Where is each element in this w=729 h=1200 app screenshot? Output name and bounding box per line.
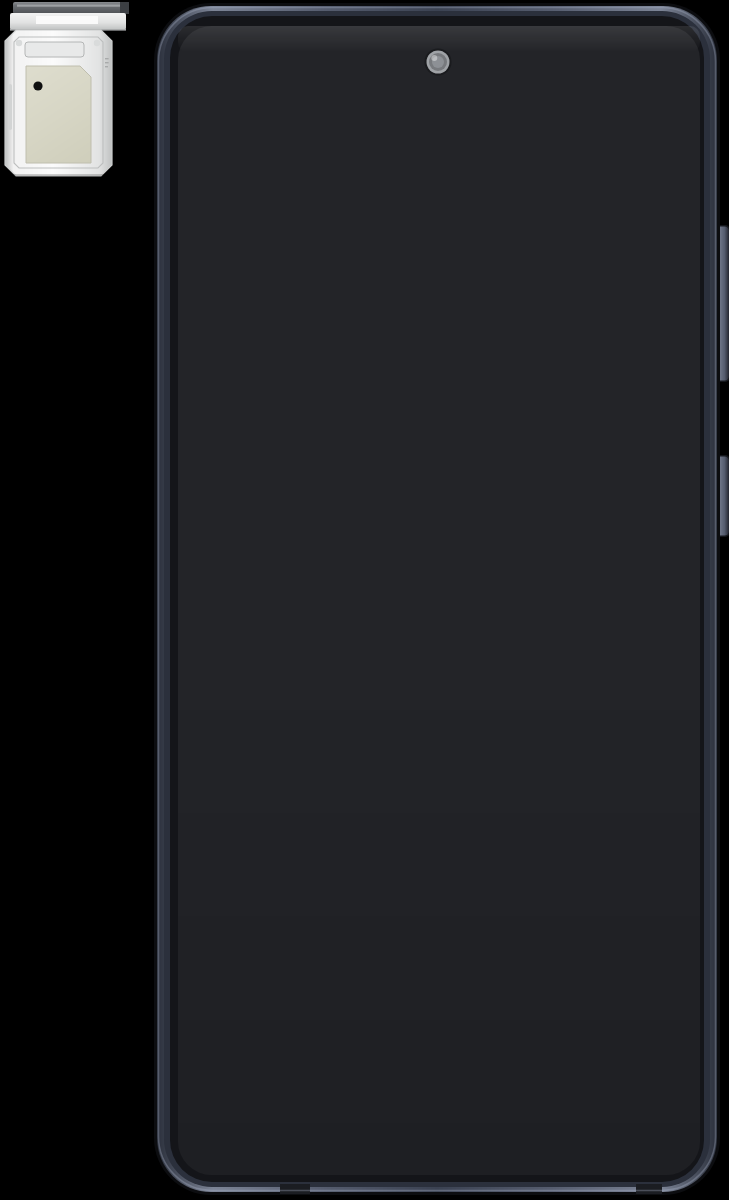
- button[interactable]: Phone with SIM card tray removed: [0, 0, 729, 1200]
